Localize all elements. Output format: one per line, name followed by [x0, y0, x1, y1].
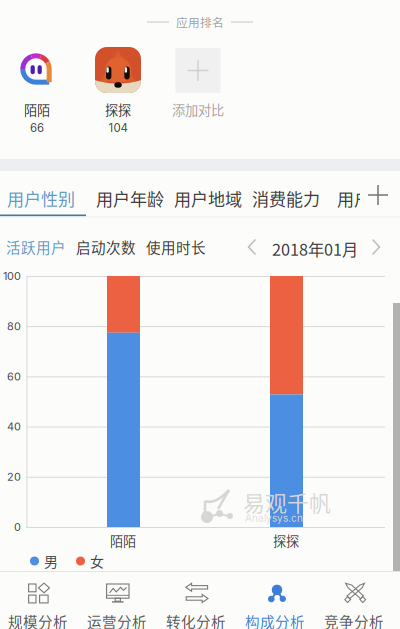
staticText: 构成分析 — [245, 611, 305, 629]
staticText: 使用时长 — [146, 236, 206, 257]
button[interactable]: 上个月 — [242, 238, 262, 256]
staticText: 探探 — [105, 100, 131, 119]
button[interactable]: 规模分析 — [0, 571, 78, 629]
staticText: 竞争分析 — [324, 611, 384, 629]
button[interactable]: 添加指标 — [366, 183, 390, 207]
staticText: 40 — [7, 420, 21, 433]
staticText: 0 — [14, 520, 21, 534]
staticText: 用户画像 — [337, 186, 400, 211]
staticText: 规模分析 — [8, 611, 68, 629]
staticText: 用户年龄 — [96, 186, 164, 211]
staticText: 探探 — [273, 531, 299, 550]
staticText: 陌陌 — [24, 100, 50, 119]
button[interactable]: 启动次数 — [76, 238, 138, 256]
staticText: 100 — [3, 269, 21, 283]
button[interactable]: 消费能力 — [252, 171, 320, 217]
staticText: 用户性别 — [7, 186, 75, 211]
staticText: 66 — [30, 121, 44, 135]
staticText: 添加对比 — [172, 100, 224, 119]
staticText: 运营分析 — [87, 611, 147, 629]
button[interactable]: 运营分析 — [77, 571, 157, 629]
button[interactable]: 用户性别 — [7, 171, 75, 217]
staticText: 活跃用户 — [6, 236, 66, 257]
button[interactable]: 转化分析 — [156, 571, 236, 629]
button[interactable]: 用户画像 — [337, 171, 400, 217]
button[interactable]: 竞争分析 — [314, 571, 394, 629]
staticText: 80 — [7, 320, 21, 333]
staticText: 启动次数 — [76, 236, 136, 257]
button[interactable]: 活跃用户 — [6, 238, 68, 256]
staticText: 消费能力 — [252, 186, 320, 211]
staticText: 用户地域 — [174, 186, 242, 211]
staticText: 2018年01月 — [272, 237, 358, 261]
staticText: 转化分析 — [166, 611, 226, 629]
staticText: 60 — [7, 370, 21, 383]
staticText: 104 — [108, 121, 127, 135]
staticText: 陌陌 — [110, 531, 136, 550]
staticText: Analysys.cn — [245, 512, 303, 524]
staticText: 应用排名 — [176, 13, 224, 30]
button[interactable]: 构成分析 — [235, 571, 315, 629]
staticText: 20 — [7, 470, 21, 483]
button[interactable]: 使用时长 — [146, 238, 208, 256]
button[interactable]: 用户地域 — [174, 171, 242, 217]
staticText: 女 — [90, 551, 104, 571]
button[interactable]: 下个月 — [366, 238, 386, 256]
button[interactable]: 用户年龄 — [96, 171, 164, 217]
staticText: 男 — [44, 551, 58, 571]
staticText: 易观千帆 — [243, 486, 331, 518]
